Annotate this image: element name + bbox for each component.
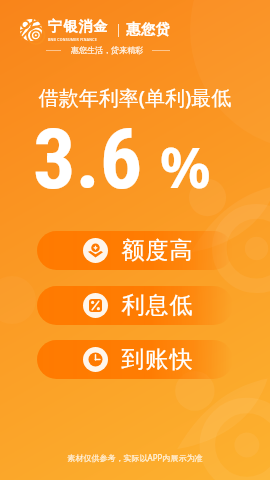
button[interactable]: 到账快 (37, 340, 233, 379)
button[interactable]: 额度高 (37, 231, 233, 270)
staticText: 惠您贷 (126, 21, 171, 39)
staticText: 素材仅供参考，实际以APP内展示为准 (0, 452, 270, 463)
button[interactable]: 利息低 (37, 286, 233, 325)
staticText: 额度高 (121, 236, 193, 265)
staticText: 宁银消金 (48, 18, 109, 36)
other: 宁银消金 logo (20, 19, 42, 41)
staticText: 到账快 (121, 345, 193, 374)
staticText: BNB CONSUMER FINANCE (48, 37, 98, 42)
staticText: 3.6 (33, 110, 143, 208)
staticText: 惠您生活，贷来精彩 (71, 45, 143, 55)
staticText: 利息低 (121, 291, 193, 320)
button[interactable]: 宁银消金 logo (20, 18, 171, 42)
staticText: % (160, 128, 211, 204)
staticText: 借款年利率(单利)最低 (0, 84, 270, 111)
